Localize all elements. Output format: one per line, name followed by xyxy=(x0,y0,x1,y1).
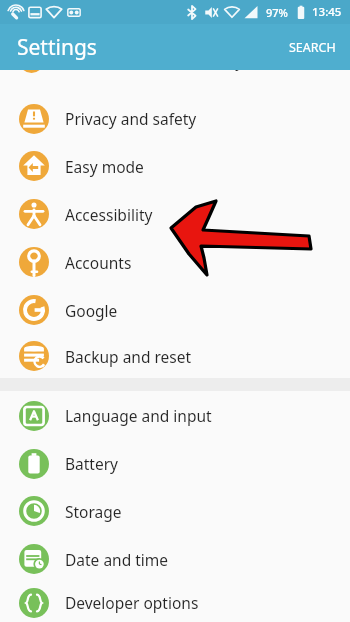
staticText: Settings xyxy=(17,33,97,62)
button[interactable]: Developer options xyxy=(0,583,350,622)
staticText: Google xyxy=(65,300,118,321)
staticText: Backup and reset xyxy=(65,346,192,367)
staticText: Accessibility xyxy=(65,204,153,225)
staticText: Storage xyxy=(65,501,122,522)
button[interactable]: Accounts xyxy=(0,238,350,286)
staticText: Language and input xyxy=(65,405,212,426)
staticText: SEARCH xyxy=(289,39,336,56)
button[interactable]: Easy mode xyxy=(0,142,350,190)
staticText: Accounts xyxy=(65,252,132,273)
button[interactable]: Language and input xyxy=(0,391,350,440)
staticText: Lock screen and security xyxy=(65,70,244,71)
button[interactable]: Storage xyxy=(0,487,350,535)
button[interactable]: Lock screen and security xyxy=(0,70,350,73)
staticText: Developer options xyxy=(65,592,199,613)
staticText: Easy mode xyxy=(65,156,144,177)
button[interactable]: Accessibility xyxy=(0,190,350,238)
button[interactable]: Google xyxy=(0,286,350,334)
staticText: 13:45 xyxy=(312,4,342,20)
staticText: 97% xyxy=(266,5,288,20)
button[interactable]: SEARCH xyxy=(275,31,350,64)
staticText: Date and time xyxy=(65,549,169,570)
button[interactable]: Date and time xyxy=(0,535,350,583)
button[interactable]: Battery xyxy=(0,440,350,487)
staticText: Battery xyxy=(65,453,119,474)
button[interactable]: Privacy and safety xyxy=(0,95,350,142)
button[interactable]: Backup and reset xyxy=(0,334,350,378)
staticText: Privacy and safety xyxy=(65,108,197,129)
